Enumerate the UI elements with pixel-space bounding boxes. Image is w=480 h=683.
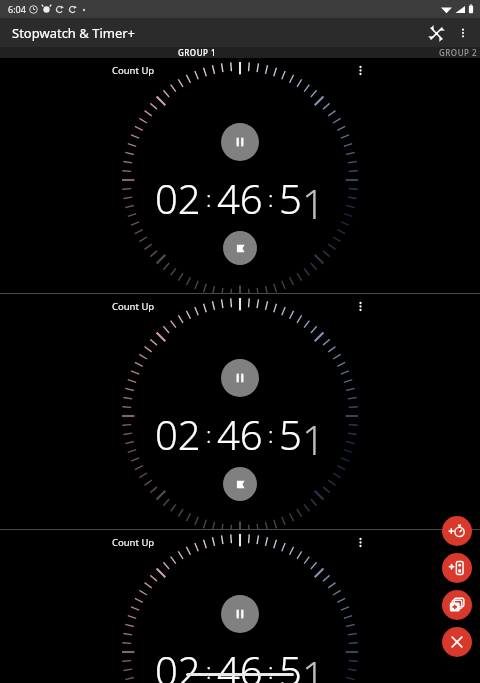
staticText: 02 [155, 407, 201, 461]
staticText: 5 [279, 643, 302, 683]
button[interactable]: Add group [442, 590, 472, 620]
button[interactable]: Pause [221, 359, 259, 397]
button[interactable]: Lap [223, 231, 257, 265]
button[interactable]: Pause [221, 595, 259, 633]
staticText: Count Up [112, 300, 155, 313]
staticText: 1 [302, 412, 325, 466]
staticText: 1 [302, 176, 325, 230]
button[interactable]: Pause [221, 123, 259, 161]
button[interactable]: Timer options [350, 296, 370, 316]
button[interactable]: Lap [223, 467, 257, 501]
staticText: Stopwatch & Timer+ [12, 24, 136, 42]
button[interactable]: Close menu [442, 627, 472, 657]
button[interactable]: Timer options [350, 60, 370, 80]
staticText: 6:04 [8, 3, 26, 15]
staticText: 5 [279, 407, 302, 461]
button[interactable]: GROUP 1 [0, 47, 394, 58]
staticText: : [206, 655, 212, 683]
staticText: 5 [279, 171, 302, 225]
staticText: : [268, 183, 274, 213]
button[interactable]: Exit fullscreen [422, 19, 450, 47]
staticText: Count Up [112, 536, 155, 549]
staticText: : [268, 655, 274, 683]
button[interactable]: Timer options [350, 532, 370, 552]
staticText: 46 [217, 407, 263, 461]
staticText: 46 [217, 171, 263, 225]
button[interactable]: Add timer [442, 516, 472, 546]
staticText: : [268, 419, 274, 449]
staticText: 02 [155, 643, 201, 683]
button[interactable]: Add stopwatch [442, 553, 472, 583]
staticText: : [206, 183, 212, 213]
button[interactable]: GROUP 2 [439, 47, 480, 58]
button[interactable]: More options [450, 20, 476, 46]
staticText: GROUP 2 [439, 47, 478, 58]
staticText: : [206, 419, 212, 449]
staticText: 46 [217, 643, 263, 683]
staticText: 02 [155, 171, 201, 225]
staticText: GROUP 1 [178, 47, 217, 58]
staticText: 1 [302, 648, 325, 683]
staticText: Count Up [112, 64, 155, 77]
